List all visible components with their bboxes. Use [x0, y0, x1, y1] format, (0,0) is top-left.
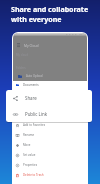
button[interactable]: Add to Favorites: [13, 120, 87, 130]
staticText: Properties: [23, 163, 38, 167]
button[interactable]: Move: [13, 140, 87, 150]
staticText: Add to Favorites: [23, 123, 46, 127]
staticText: Auto Upload: [26, 74, 43, 78]
button[interactable]: Share: [6, 90, 92, 106]
button[interactable]: Delete to Trash: [13, 170, 87, 180]
button[interactable]: Set value: [13, 150, 87, 160]
staticText: Move: [23, 143, 31, 147]
staticText: Share and collaborate: [11, 4, 89, 14]
staticText: with everyone: [11, 14, 62, 24]
staticText: Documents: [23, 83, 39, 87]
staticText: Set value: [23, 153, 36, 157]
button[interactable]: Rename: [13, 130, 87, 140]
staticText: Share: [25, 95, 37, 101]
staticText: Delete to Trash: [23, 173, 44, 177]
button[interactable]: Public Link: [6, 106, 92, 122]
staticText: My Cloud: [24, 43, 39, 47]
staticText: Folders: [16, 66, 26, 70]
button[interactable]: Properties: [13, 160, 87, 170]
staticText: Public Link: [25, 111, 48, 117]
button[interactable]: Documents: [13, 81, 87, 88]
staticText: My cloud: [16, 53, 28, 57]
other: Menu: [17, 43, 20, 47]
staticText: Rename: [23, 133, 35, 137]
